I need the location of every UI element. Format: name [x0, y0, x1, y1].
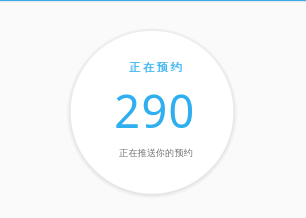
button[interactable]: 正在预约 290，正在推送你的预约: [71, 31, 234, 194]
staticText: 正在推送你的预约: [3, 147, 306, 159]
staticText: 290: [2, 80, 306, 141]
staticText: 正在预约: [3, 60, 306, 74]
staticText: 正在预约: [4, 60, 306, 74]
